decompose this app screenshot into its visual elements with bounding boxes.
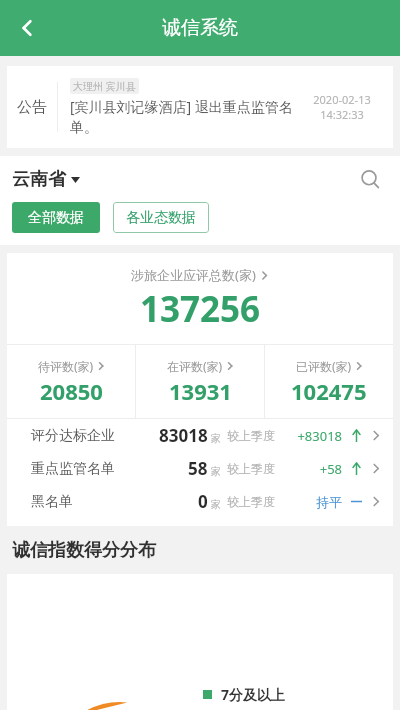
staticText: 诚信系统 (162, 16, 238, 40)
staticText: 待评数(家) (38, 358, 94, 374)
staticText: 14:32:33 (320, 107, 364, 122)
staticText: 较上季度 (227, 494, 275, 509)
staticText: 较上季度 (227, 428, 275, 443)
button[interactable]: 在评数(家) (136, 345, 264, 418)
staticText: +83018 (275, 427, 342, 445)
staticText: 7分及以上 (221, 685, 286, 704)
staticText: 102475 (291, 376, 367, 406)
staticText: 大理州 宾川县 (73, 79, 136, 93)
button[interactable]: 全部数据 (12, 202, 100, 233)
staticText: 已评数(家) (296, 358, 352, 374)
staticText: 20850 (40, 376, 103, 406)
button[interactable]: Search (350, 159, 390, 199)
staticText: 0 (198, 490, 208, 513)
button[interactable]: 云南省 (12, 168, 80, 191)
staticText: 重点监管名单 (31, 460, 115, 478)
staticText: 家 (211, 465, 221, 478)
staticText: 黑名单 (31, 493, 73, 511)
staticText: 各业态数据 (126, 209, 196, 227)
staticText: 家 (211, 498, 221, 511)
staticText: 58 (188, 457, 208, 480)
staticText: 评分达标企业 (31, 427, 115, 445)
staticText: 83018 (159, 424, 208, 447)
staticText: 137256 (140, 285, 261, 333)
button[interactable]: 黑名单 (7, 485, 393, 518)
staticText: 云南省 (12, 168, 66, 191)
button[interactable]: 公告 (7, 66, 393, 148)
button[interactable]: 涉旅企业应评总数(家) (7, 253, 393, 344)
staticText: 较上季度 (227, 461, 275, 476)
button[interactable]: 已评数(家) (265, 345, 393, 418)
button[interactable]: 重点监管名单 (7, 452, 393, 485)
staticText: 持平 (275, 494, 342, 510)
staticText: 在评数(家) (167, 358, 223, 374)
button[interactable]: 待评数(家) (7, 345, 135, 418)
button[interactable]: Back (6, 6, 50, 50)
staticText: 2020-02-13 (313, 92, 371, 107)
button[interactable]: 评分达标企业 (7, 419, 393, 452)
staticText: 公告 (17, 98, 47, 117)
staticText: 13931 (169, 376, 232, 406)
staticText: 诚信指数得分分布 (12, 539, 156, 562)
staticText: 全部数据 (28, 209, 84, 227)
staticText: 家 (211, 432, 221, 445)
staticText: [宾川县刘记缘酒店] 退出重点监管名单。 (70, 97, 295, 136)
button[interactable]: 各业态数据 (113, 202, 209, 233)
staticText: +58 (275, 460, 342, 478)
staticText: 涉旅企业应评总数(家) (131, 266, 256, 284)
